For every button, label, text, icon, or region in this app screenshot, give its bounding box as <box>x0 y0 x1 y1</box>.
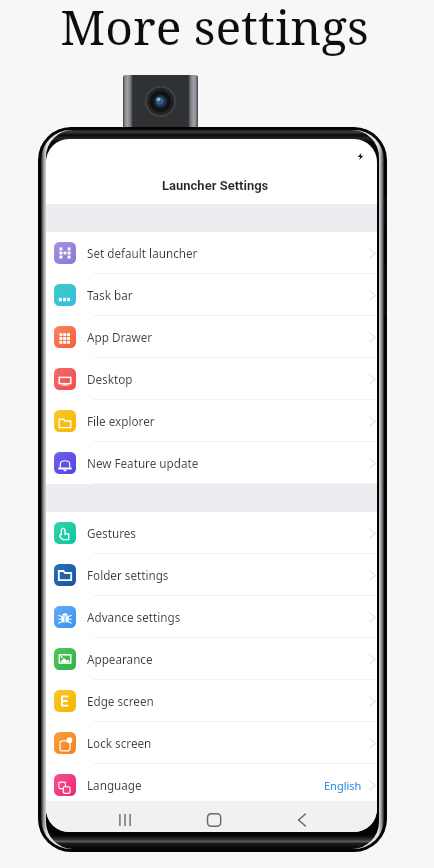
staticText: Advance settings <box>87 609 181 625</box>
staticText: Task bar <box>87 287 133 303</box>
button[interactable]: Recent apps <box>109 810 141 830</box>
button[interactable]: Set default launcher <box>46 232 377 274</box>
button[interactable]: File explorer <box>46 400 377 442</box>
staticText: Launcher Settings <box>162 178 269 193</box>
button[interactable]: App Drawer <box>46 316 377 358</box>
staticText: Set default launcher <box>87 245 198 261</box>
button[interactable]: Lock screen <box>46 722 377 764</box>
staticText: New Feature update <box>87 455 199 471</box>
staticText: App Drawer <box>87 329 153 345</box>
staticText: Appearance <box>87 651 153 667</box>
staticText: Language <box>87 777 142 793</box>
staticText: Edge screen <box>87 693 154 709</box>
button[interactable]: Desktop <box>46 358 377 400</box>
staticText: Lock screen <box>87 735 152 751</box>
button[interactable]: Folder settings <box>46 554 377 596</box>
staticText: Desktop <box>87 371 133 387</box>
staticText: Gestures <box>87 525 136 541</box>
button[interactable]: Gestures <box>46 512 377 554</box>
button[interactable]: New Feature update <box>46 442 377 484</box>
button[interactable]: Home <box>198 810 230 830</box>
button[interactable]: Back <box>286 810 318 830</box>
button[interactable]: Advance settings <box>46 596 377 638</box>
button[interactable]: Language <box>46 764 377 806</box>
button[interactable]: Edge screen <box>46 680 377 722</box>
staticText: English <box>324 778 362 793</box>
staticText: Folder settings <box>87 567 169 583</box>
button[interactable]: Task bar <box>46 274 377 316</box>
staticText: More settings <box>60 0 369 59</box>
staticText: File explorer <box>87 413 155 429</box>
button[interactable]: Appearance <box>46 638 377 680</box>
